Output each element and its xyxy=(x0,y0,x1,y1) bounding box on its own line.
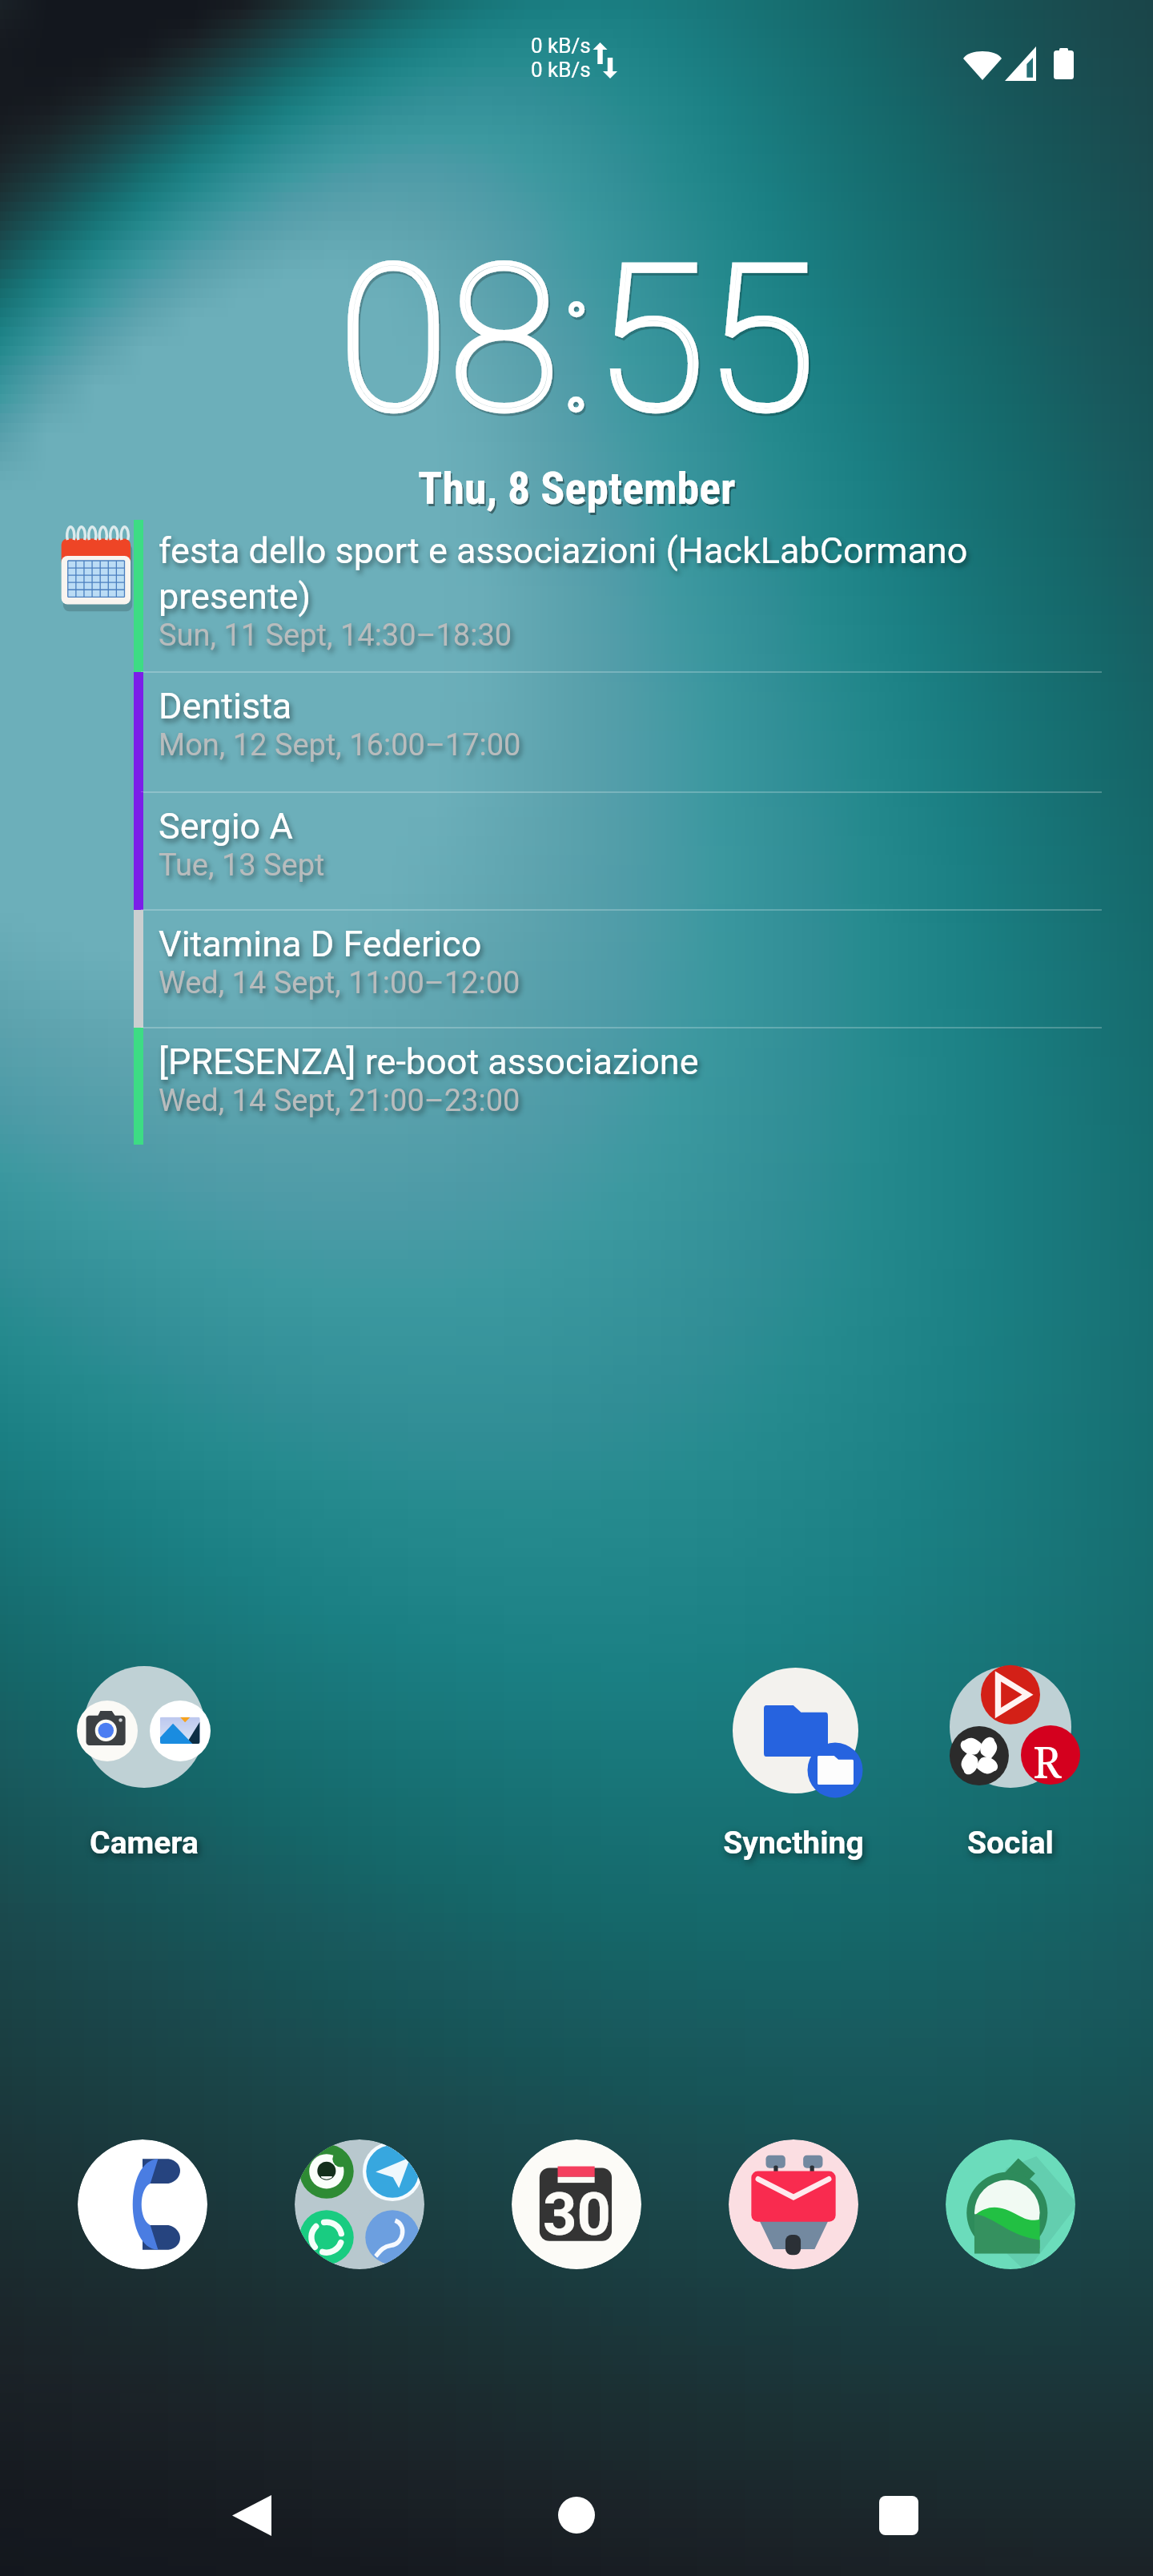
button[interactable]: Back xyxy=(203,2467,299,2563)
staticText: 30 xyxy=(543,2180,611,2249)
staticText: [PRESENZA] re-boot associazione xyxy=(159,1040,699,1083)
staticText: festa dello sport e associazioni (HackLa… xyxy=(159,529,968,618)
button[interactable]: 30 xyxy=(512,2139,641,2269)
button[interactable] xyxy=(78,2139,207,2269)
staticText: 0 kB/s xyxy=(531,58,591,82)
button[interactable]: Home xyxy=(528,2467,625,2563)
button[interactable]: R xyxy=(930,1661,1091,1870)
staticText: 08:55 xyxy=(338,222,816,458)
staticText: 08:55 xyxy=(339,224,818,461)
staticText: Wed, 14 Sept, 21:00–23:00 xyxy=(159,1083,520,1119)
staticText: Vitamina D Federico xyxy=(159,923,482,965)
button[interactable]: Camera xyxy=(64,1661,224,1870)
staticText: Thu, 8 September xyxy=(420,465,737,517)
button[interactable]: [PRESENZA] re-boot associazione xyxy=(0,1028,1153,1145)
staticText: Mon, 12 Sept, 16:00–17:00 xyxy=(159,727,521,763)
button[interactable]: festa dello sport e associazioni (HackLa… xyxy=(0,520,1153,672)
staticText: Tue, 13 Sept xyxy=(159,847,325,883)
staticText: Camera xyxy=(90,1825,199,1862)
staticText: Wed, 14 Sept, 11:00–12:00 xyxy=(159,965,520,1001)
button[interactable]: Dentista xyxy=(0,672,1153,792)
button[interactable] xyxy=(295,2139,424,2269)
button[interactable]: Sergio A xyxy=(0,792,1153,910)
staticText: Sun, 11 Sept, 14:30–18:30 xyxy=(159,618,512,654)
staticText: R xyxy=(1033,1732,1062,1791)
button[interactable] xyxy=(946,2139,1075,2269)
staticText: Dentista xyxy=(159,685,292,727)
staticText: Thu, 8 September xyxy=(418,462,736,515)
staticText: Syncthing xyxy=(723,1825,864,1862)
button[interactable]: Recents xyxy=(850,2467,946,2563)
staticText: 0 kB/s xyxy=(531,34,591,58)
staticText: Social xyxy=(967,1825,1054,1862)
button[interactable] xyxy=(729,2139,858,2269)
button[interactable]: Vitamina D Federico xyxy=(0,910,1153,1028)
staticText: Sergio A xyxy=(159,805,293,847)
button[interactable]: Syncthing xyxy=(697,1661,890,1870)
